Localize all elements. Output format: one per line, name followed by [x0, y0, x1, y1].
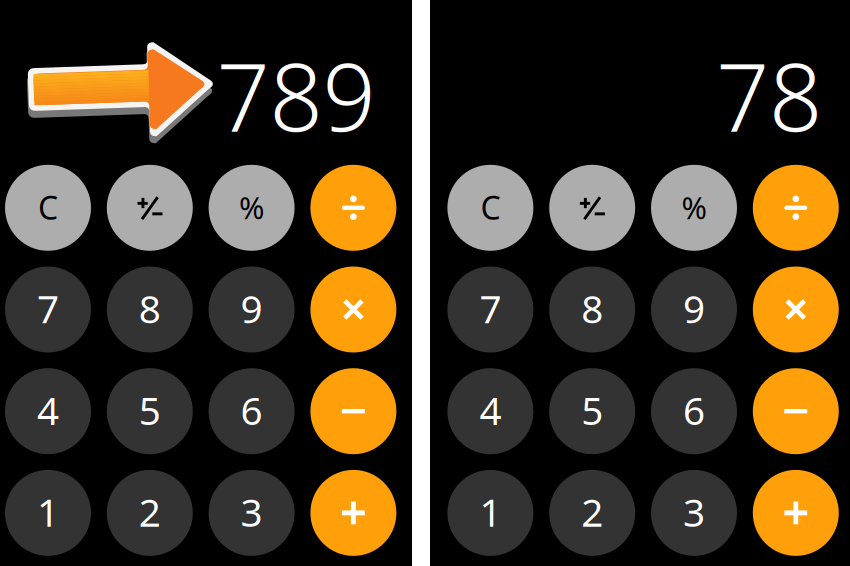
- staticText: 789: [216, 33, 375, 157]
- staticText: %: [239, 187, 264, 228]
- staticText: 1: [479, 486, 501, 537]
- button[interactable]: Minus: [753, 368, 839, 454]
- button[interactable]: 6: [651, 368, 737, 454]
- staticText: 4: [37, 384, 59, 436]
- button[interactable]: 6: [209, 368, 295, 454]
- staticText: 3: [241, 486, 263, 537]
- staticText: 8: [581, 283, 603, 334]
- staticText: 78: [716, 33, 822, 157]
- button[interactable]: 1: [5, 470, 91, 556]
- button[interactable]: Percent: [209, 165, 295, 251]
- button[interactable]: 7: [447, 266, 533, 352]
- button[interactable]: 4: [5, 368, 91, 454]
- staticText: 6: [241, 384, 263, 436]
- staticText: 2: [139, 486, 161, 537]
- button[interactable]: Multiply: [753, 266, 839, 352]
- button[interactable]: C: [447, 165, 533, 251]
- button[interactable]: 3: [209, 470, 295, 556]
- button[interactable]: 1: [447, 470, 533, 556]
- staticText: C: [38, 186, 58, 229]
- button[interactable]: Minus: [310, 368, 396, 454]
- staticText: C: [480, 186, 500, 229]
- staticText: 7: [37, 283, 59, 334]
- button[interactable]: 5: [549, 368, 635, 454]
- staticText: 2: [581, 486, 603, 537]
- button[interactable]: Plus: [310, 470, 396, 556]
- button[interactable]: 4: [447, 368, 533, 454]
- staticText: 3: [683, 486, 705, 537]
- staticText: 7: [479, 283, 501, 334]
- staticText: %: [681, 187, 706, 228]
- button[interactable]: 8: [107, 266, 193, 352]
- button[interactable]: 7: [5, 266, 91, 352]
- staticText: 4: [479, 384, 501, 436]
- button[interactable]: 5: [107, 368, 193, 454]
- button[interactable]: Plus: [753, 470, 839, 556]
- button[interactable]: Divide: [753, 165, 839, 251]
- staticText: 5: [139, 384, 161, 436]
- button[interactable]: 9: [651, 266, 737, 352]
- staticText: 6: [683, 384, 705, 436]
- button[interactable]: 2: [107, 470, 193, 556]
- button[interactable]: 8: [549, 266, 635, 352]
- button[interactable]: C: [5, 165, 91, 251]
- staticText: 8: [139, 283, 161, 334]
- staticText: 9: [683, 283, 705, 334]
- button[interactable]: Multiply: [310, 266, 396, 352]
- staticText: 1: [37, 486, 59, 537]
- button[interactable]: Divide: [310, 165, 396, 251]
- button[interactable]: 3: [651, 470, 737, 556]
- button[interactable]: 9: [209, 266, 295, 352]
- staticText: 5: [581, 384, 603, 436]
- staticText: 9: [241, 283, 263, 334]
- button[interactable]: Plus minus: [549, 165, 635, 251]
- button[interactable]: Percent: [651, 165, 737, 251]
- button[interactable]: Plus minus: [107, 165, 193, 251]
- button[interactable]: 2: [549, 470, 635, 556]
